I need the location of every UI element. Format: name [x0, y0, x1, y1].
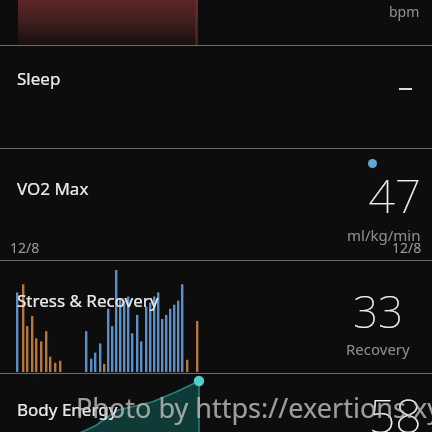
staticText: Body Energy: [17, 398, 118, 421]
staticText: 47: [368, 164, 421, 227]
staticText: ml/kg/min: [347, 225, 421, 245]
staticText: Photo by https://exertions.xyz/: [76, 389, 432, 426]
staticText: 12/8: [10, 238, 40, 257]
button[interactable]: Stress & Recovery: [0, 261, 432, 373]
button[interactable]: VO2 Max: [0, 149, 432, 260]
staticText: bpm: [389, 2, 420, 21]
button[interactable]: Sleep: [0, 46, 432, 148]
staticText: 33: [353, 281, 404, 341]
staticText: VO2 Max: [17, 177, 89, 200]
staticText: Recovery: [346, 339, 410, 359]
button[interactable]: bpm: [0, 0, 432, 45]
staticText: 12/8: [392, 238, 422, 257]
staticText: 58: [369, 384, 422, 432]
staticText: Sleep: [17, 67, 61, 90]
button[interactable]: Body Energy: [0, 374, 432, 432]
staticText: Stress & Recovery: [17, 289, 159, 312]
